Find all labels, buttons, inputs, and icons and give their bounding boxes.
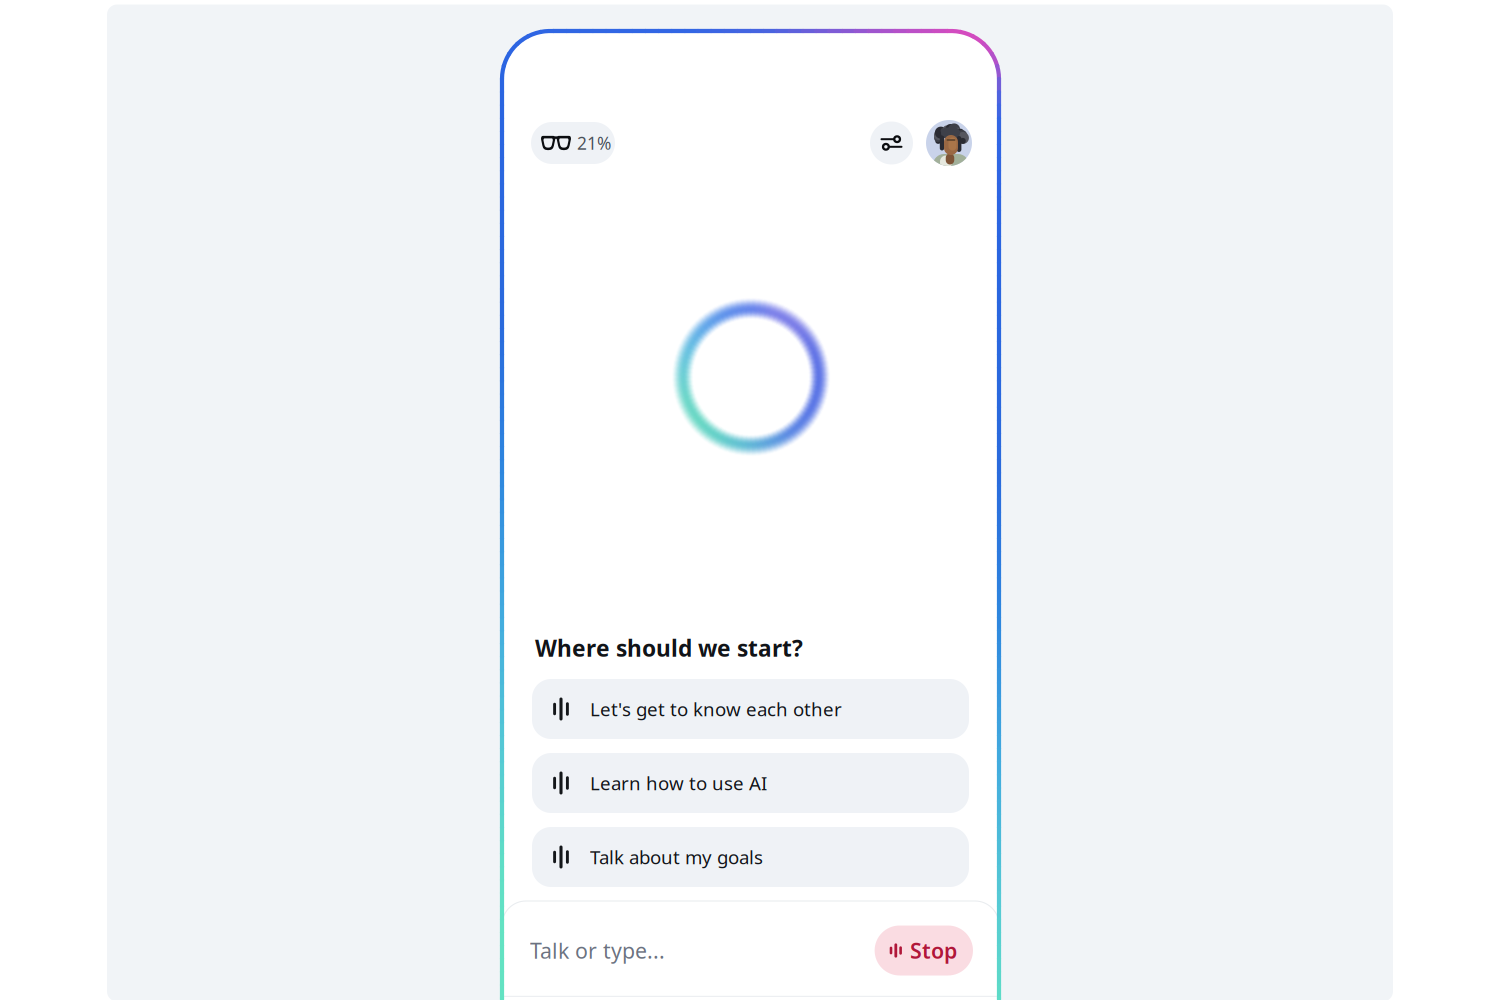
staticText: Talk about my goals [590, 845, 763, 869]
staticText: Talk or type... [530, 936, 665, 965]
button[interactable]: 21% [531, 122, 615, 164]
staticText: 21% [577, 131, 611, 154]
staticText: Learn how to use AI [590, 771, 767, 795]
button[interactable]: Talk about my goals [532, 827, 969, 887]
button[interactable]: Let's get to know each other [532, 679, 969, 739]
staticText: Where should we start? [535, 633, 803, 663]
staticText: Let's get to know each other [590, 697, 842, 721]
button[interactable]: Talk or type... [530, 925, 875, 975]
staticText: Stop [910, 936, 957, 965]
button[interactable]: Profile [926, 120, 972, 166]
button[interactable]: Stop [875, 925, 973, 975]
button[interactable]: Learn how to use AI [532, 753, 969, 813]
button[interactable]: Settings [870, 121, 913, 164]
